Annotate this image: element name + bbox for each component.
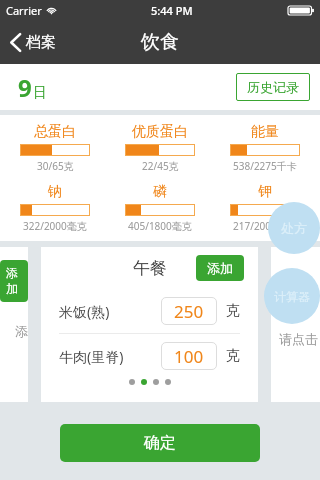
staticText: 日 — [33, 84, 47, 102]
button[interactable]: Back — [6, 27, 60, 58]
staticText: 能量 — [251, 123, 279, 141]
staticText: 牛肉(里脊) — [59, 347, 124, 366]
staticText: 添 — [15, 323, 28, 339]
staticText: 午餐 — [133, 258, 167, 279]
staticText: 请点击 — [279, 331, 318, 347]
staticText: 历史记录 — [247, 79, 299, 95]
staticText: 100 — [174, 345, 204, 368]
button[interactable]: 米饭(熟) — [59, 289, 240, 333]
staticText: 9 — [18, 71, 32, 104]
staticText: 克 — [226, 347, 240, 365]
staticText: 磷 — [153, 183, 167, 201]
button[interactable]: 钠 — [5, 183, 105, 233]
staticText: 计算器 — [274, 289, 310, 304]
staticText: 确定 — [144, 433, 176, 453]
staticText: 添加 — [207, 260, 233, 276]
button[interactable]: 牛肉(里脊) — [59, 334, 240, 378]
button[interactable]: 磷 — [110, 183, 210, 233]
staticText: 322/2000毫克 — [23, 219, 87, 233]
staticText: 405/1800毫克 — [128, 219, 192, 233]
staticText: 538/2275千卡 — [233, 159, 297, 173]
staticText: 优质蛋白 — [132, 123, 188, 141]
button[interactable]: 确定 — [60, 424, 260, 462]
staticText: 5:44 PM — [151, 3, 193, 18]
button[interactable]: 添加 — [6, 265, 22, 297]
staticText: 添加 — [6, 265, 22, 297]
staticText: 米饭(熟) — [59, 302, 110, 321]
button[interactable]: 能量 — [215, 123, 315, 173]
staticText: 档案 — [26, 33, 56, 52]
staticText: 22/45克 — [142, 159, 179, 173]
button[interactable]: 处方 — [268, 202, 320, 254]
button[interactable]: 总蛋白 — [5, 123, 105, 173]
button[interactable]: 计算器 — [264, 268, 320, 324]
button[interactable]: 历史记录 — [236, 73, 310, 101]
staticText: 30/65克 — [37, 159, 74, 173]
staticText: 217/2000毫克 — [233, 219, 297, 233]
button[interactable]: 钾 — [215, 183, 315, 233]
staticText: 250 — [174, 300, 204, 323]
staticText: Carrier — [6, 3, 42, 18]
button[interactable]: 优质蛋白 — [110, 123, 210, 173]
staticText: 处方 — [281, 220, 307, 236]
button[interactable]: 添加 — [196, 255, 244, 281]
staticText: 总蛋白 — [34, 123, 76, 141]
staticText: 饮食 — [141, 30, 179, 54]
staticText: 钠 — [48, 183, 62, 201]
staticText: 钾 — [258, 183, 272, 201]
staticText: 克 — [226, 302, 240, 320]
